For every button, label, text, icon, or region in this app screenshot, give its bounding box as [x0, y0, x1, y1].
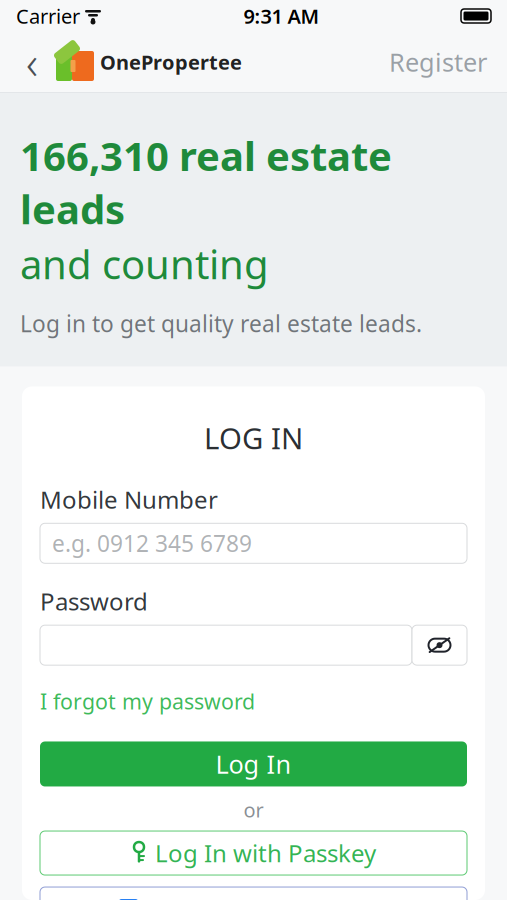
- button[interactable]: Register: [381, 40, 495, 84]
- button[interactable]: Show password: [412, 625, 467, 665]
- staticText: and counting: [20, 237, 269, 290]
- staticText: [79, 1, 85, 31]
- staticText: LOG IN: [204, 418, 303, 457]
- staticText: 166,310 real estate leads: [20, 129, 392, 235]
- staticText: Log In: [215, 747, 291, 781]
- staticText: Register: [389, 45, 487, 79]
- staticText: f: [125, 896, 133, 900]
- staticText: ◗: [92, 15, 93, 17]
- staticText: 9:31 AM: [243, 3, 319, 29]
- button[interactable]: Log In with Passkey: [40, 831, 467, 875]
- staticText: e.g. 0912 345 6789: [52, 528, 252, 558]
- staticText: OnePropertee: [100, 49, 242, 75]
- button[interactable]: I forgot my password: [40, 683, 467, 719]
- button[interactable]: f: [40, 887, 467, 900]
- staticText: I forgot my password: [40, 687, 255, 715]
- button[interactable]: Log In: [40, 741, 467, 786]
- staticText: Log In with Passkey: [155, 837, 376, 869]
- staticText: Mobile Number: [40, 483, 218, 515]
- staticText: Log in to get quality real estate leads.: [20, 308, 422, 338]
- staticText: ‹: [26, 32, 38, 92]
- button[interactable]: Back: [12, 40, 52, 84]
- staticText: Carrier: [16, 3, 80, 29]
- staticText: or: [243, 796, 263, 823]
- staticText: Password: [40, 585, 148, 617]
